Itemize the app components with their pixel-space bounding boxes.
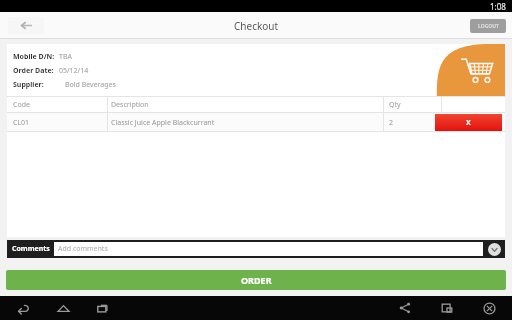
staticText: Code	[13, 100, 30, 110]
staticText: Bold Beverages	[65, 80, 116, 90]
staticText: Qty	[389, 100, 401, 110]
button[interactable]: Back	[8, 17, 44, 34]
button[interactable]: Add comments	[54, 242, 483, 256]
staticText: 2	[389, 118, 394, 128]
button[interactable]: Close	[478, 297, 500, 319]
staticText: Checkout	[234, 19, 279, 33]
staticText: Comments	[12, 244, 50, 254]
button[interactable]: Screenshot	[436, 297, 458, 319]
staticText: Order Date:	[13, 66, 54, 76]
button[interactable]: Recents	[92, 297, 114, 319]
button[interactable]: LOGOUT	[470, 19, 506, 33]
button[interactable]: Back	[12, 297, 34, 319]
button[interactable]: Remove item	[435, 114, 502, 131]
staticText: Add comments	[58, 244, 108, 254]
staticText: TBA	[59, 52, 72, 62]
staticText: X	[466, 118, 471, 128]
staticText: LOGOUT	[478, 23, 499, 30]
staticText: ORDER	[241, 274, 272, 286]
button[interactable]: Share	[394, 297, 416, 319]
button[interactable]: Comment options	[483, 240, 505, 258]
staticText: CL01	[13, 118, 30, 128]
button[interactable]: CL01	[7, 113, 505, 132]
staticText: 1:08	[490, 1, 506, 12]
staticText: Classic Juice Apple Blackcurrant	[111, 118, 215, 128]
button[interactable]: ORDER	[6, 270, 506, 290]
staticText: Description	[111, 100, 149, 110]
staticText: Mobile D/N:	[13, 52, 55, 62]
staticText: Supplier:	[13, 80, 44, 90]
staticText: 05/12/14	[59, 66, 89, 76]
button[interactable]: Home	[52, 297, 74, 319]
